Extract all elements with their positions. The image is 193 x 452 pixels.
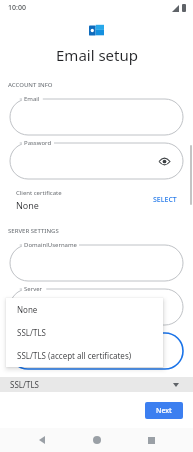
button[interactable]: Server [10, 289, 183, 325]
staticText: worldmanuals.com [24, 301, 105, 313]
staticText: Server [24, 285, 43, 293]
staticText: SSL/TLS [17, 327, 46, 338]
staticText: ACCOUNT INFO [8, 81, 53, 89]
staticText: None [17, 304, 38, 315]
button[interactable]: Home [85, 428, 109, 452]
staticText: Port [24, 329, 36, 337]
button[interactable]: Next [145, 402, 183, 419]
staticText: DomainlUsername [24, 241, 77, 249]
button[interactable]: Back [30, 428, 54, 452]
button[interactable]: DomainlUsername [10, 245, 183, 281]
staticText: Email [24, 95, 40, 103]
staticText: None [16, 199, 39, 211]
button[interactable]: Client certificate [8, 187, 185, 213]
staticText: SSL/TLS [10, 379, 173, 390]
button[interactable]: Email [10, 99, 183, 135]
button[interactable]: SSL/TLS [0, 377, 193, 392]
button[interactable]: None [6, 298, 163, 321]
button[interactable]: SSL/TLS [6, 321, 163, 344]
button[interactable]: Password [10, 143, 183, 179]
button[interactable]: Show password [157, 154, 171, 168]
staticText: Client certificate [16, 189, 62, 197]
staticText: SERVER SETTINGS [8, 227, 59, 235]
button[interactable]: Port [10, 333, 183, 369]
staticText: Email setup [56, 45, 138, 65]
staticText: 10:00 [8, 3, 26, 13]
staticText: Next [156, 406, 172, 416]
staticText: SELECT [153, 195, 177, 205]
button[interactable]: SSL/TLS (accept all certificates) [6, 344, 163, 367]
staticText: SSL/TLS (accept all certificates) [17, 350, 132, 361]
button[interactable]: Recents [139, 428, 163, 452]
staticText: Password [24, 139, 52, 147]
